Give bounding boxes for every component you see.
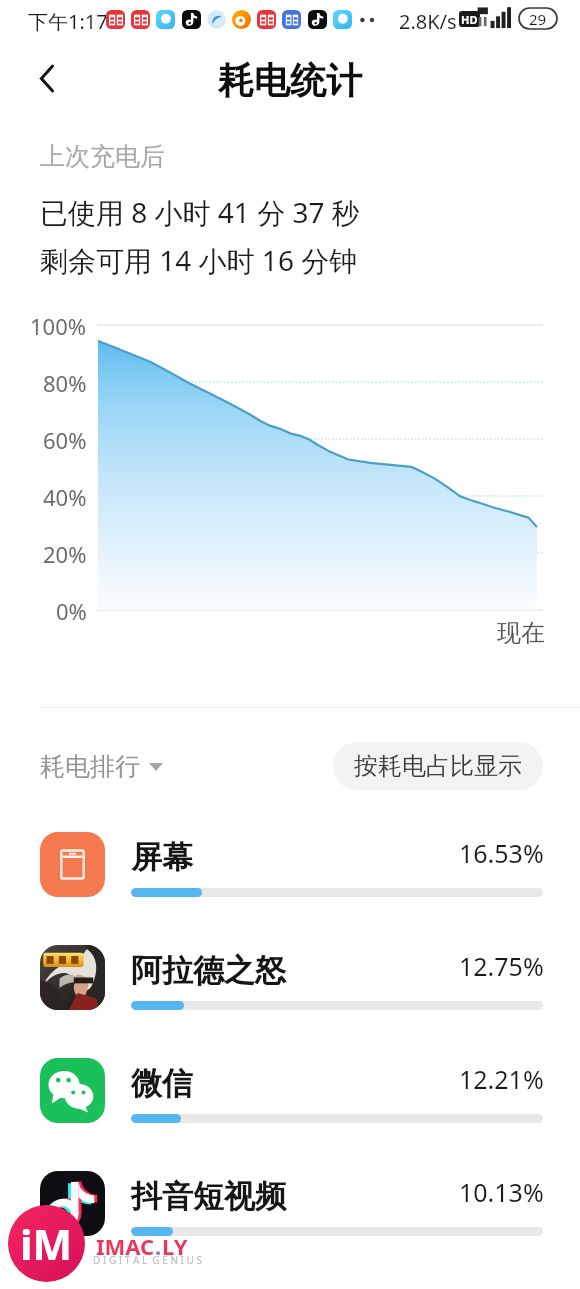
staticText: 29 [529,9,547,29]
staticText: 微信 [131,1064,193,1103]
staticText: 60% [43,425,87,455]
staticText: 耗电排行 [40,751,140,782]
staticText: 12.21% [459,1062,544,1096]
staticText: IMAC [96,1231,155,1261]
staticText: 剩余可用 14 小时 16 分钟 [40,241,358,279]
staticText: 阿拉德之怒 [131,951,286,990]
button[interactable]: 微信 [0,1058,580,1154]
staticText: 40% [43,482,87,512]
staticText: 耗电统计 [218,58,362,103]
staticText: 100% [30,311,87,341]
staticText: 现在 [497,618,545,648]
button[interactable]: 按耗电占比显示 [333,742,543,790]
staticText: HD [461,12,478,27]
staticText: 16.53% [459,836,544,870]
button[interactable]: 耗电排行 [40,745,163,788]
staticText: 上次充电后 [40,141,165,172]
button[interactable]: 抖音短视频 [0,1171,580,1267]
staticText: 10.13% [459,1175,544,1209]
staticText: 抖音短视频 [131,1177,286,1216]
button[interactable]: 屏幕 [0,832,580,928]
staticText: . [155,1231,162,1261]
staticText: 下午1:17 [28,8,108,35]
staticText: 2.8K/s [399,8,457,35]
staticText: D I G I T A L G E N I U S [93,1253,202,1267]
staticText: 80% [43,368,87,398]
staticText: 按耗电占比显示 [354,751,522,781]
staticText: 已使用 8 小时 41 分 37 秒 [40,193,360,231]
staticText: 0% [56,596,87,626]
button[interactable]: Back [25,56,69,100]
staticText: 20% [43,539,87,569]
staticText: 12.75% [459,949,544,983]
staticText: iM [20,1215,73,1272]
staticText: 屏幕 [131,838,193,877]
staticText: LY [162,1231,188,1261]
button[interactable]: 阿拉德之怒 [0,945,580,1041]
